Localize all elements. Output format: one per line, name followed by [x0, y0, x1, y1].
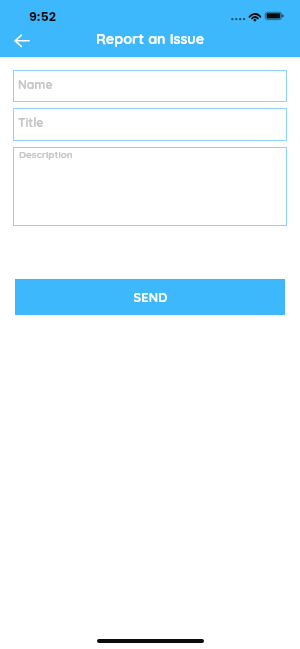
staticText: SEND [133, 289, 168, 305]
button[interactable]: SEND [15, 279, 285, 315]
button[interactable]: Name [13, 70, 287, 102]
button[interactable]: Title [13, 108, 287, 141]
staticText: Title [18, 115, 44, 130]
button[interactable]: Back [7, 27, 35, 55]
staticText: Description [19, 148, 73, 160]
staticText: 9:52 [29, 8, 56, 26]
button[interactable]: Description [13, 147, 287, 226]
staticText: Report an Issue [96, 30, 205, 48]
staticText: Name [18, 77, 53, 92]
